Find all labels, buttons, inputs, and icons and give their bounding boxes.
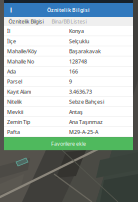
staticText: Öznitelik Bilgisi <box>47 6 90 14</box>
staticText: Nitelik <box>7 98 22 105</box>
staticText: Başarakavak <box>69 48 101 55</box>
staticText: Konya <box>69 27 84 35</box>
button[interactable]: Öznitelik Bilgisi <box>4 17 48 26</box>
staticText: Parsel <box>7 78 22 85</box>
staticText: i <box>10 6 12 14</box>
staticText: 9 <box>69 78 72 85</box>
staticText: Mahalle No <box>7 58 34 65</box>
button[interactable]: Favorilere ekle <box>4 137 133 150</box>
staticText: İl <box>7 27 10 35</box>
staticText: Sebze Bahçesi <box>69 98 104 105</box>
staticText: Bina/BB Listesi <box>51 18 86 25</box>
staticText: Selçuklu <box>69 38 89 45</box>
staticText: Favorilere ekle <box>51 140 86 147</box>
staticText: 166 <box>69 68 78 75</box>
staticText: 3.4636,73 <box>69 88 92 95</box>
staticText: İlçe <box>7 38 16 45</box>
staticText: Ada <box>7 68 16 75</box>
button[interactable]: Bina/BB Listesi <box>48 17 90 26</box>
staticText: Öznitelik Bilgisi <box>8 18 43 25</box>
staticText: Zemin Tip <box>7 118 30 125</box>
staticText: Ana Taşınmaz <box>69 118 103 125</box>
staticText: Mevkii <box>7 108 23 115</box>
staticText: 128748 <box>69 58 87 65</box>
button[interactable]: Bilgi <box>4 3 18 17</box>
staticText: Pafta <box>7 128 20 136</box>
staticText: Kayıt Alanı <box>7 88 31 95</box>
staticText: Arıtaş <box>69 108 83 115</box>
staticText: Mahalle/Köy <box>7 48 37 55</box>
staticText: M29-A-25-A <box>69 128 98 136</box>
